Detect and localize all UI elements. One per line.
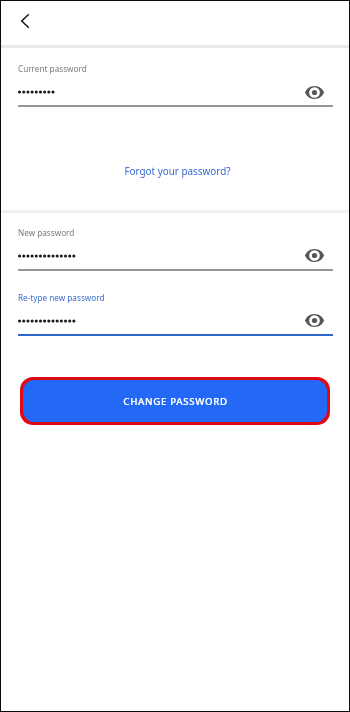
button[interactable]: Back [6, 2, 43, 39]
button[interactable]: Show password [302, 308, 326, 332]
button[interactable]: Show password [302, 80, 326, 104]
staticText: Current password [18, 63, 87, 74]
button[interactable]: Forgot your password? [118, 160, 236, 180]
staticText: Re-type new password [18, 292, 105, 303]
button[interactable]: CHANGE PASSWORD [23, 380, 327, 422]
staticText: New password [18, 227, 75, 238]
staticText: CHANGE PASSWORD [123, 395, 228, 408]
staticText: Forgot your password? [124, 164, 231, 177]
button[interactable]: Show password [302, 243, 326, 267]
